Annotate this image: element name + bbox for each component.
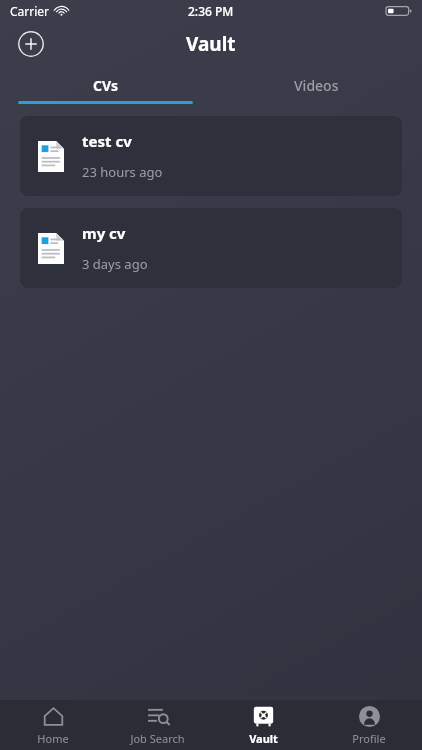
staticText: 3 days ago bbox=[82, 255, 148, 273]
staticText: Carrier bbox=[10, 3, 50, 19]
staticText: Videos bbox=[294, 76, 339, 95]
staticText: Job Search bbox=[130, 731, 185, 746]
staticText: 2:36 PM bbox=[188, 3, 234, 19]
button[interactable]: Home bbox=[0, 700, 105, 750]
staticText: Vault bbox=[249, 731, 278, 746]
staticText: CVs bbox=[93, 76, 118, 95]
button[interactable]: Add bbox=[18, 31, 44, 57]
staticText: Profile bbox=[352, 731, 386, 746]
button[interactable]: Vault bbox=[210, 700, 316, 750]
staticText: Vault bbox=[186, 31, 236, 57]
staticText: test cv bbox=[82, 131, 132, 151]
button[interactable]: Profile bbox=[316, 700, 422, 750]
staticText: my cv bbox=[82, 223, 126, 243]
button[interactable]: my cv bbox=[20, 208, 402, 288]
button[interactable]: test cv bbox=[20, 116, 402, 196]
button[interactable]: Videos bbox=[211, 66, 422, 104]
button[interactable]: Job Search bbox=[105, 700, 210, 750]
button[interactable]: CVs bbox=[0, 66, 211, 104]
staticText: 23 hours ago bbox=[82, 163, 163, 181]
staticText: Home bbox=[37, 731, 69, 746]
